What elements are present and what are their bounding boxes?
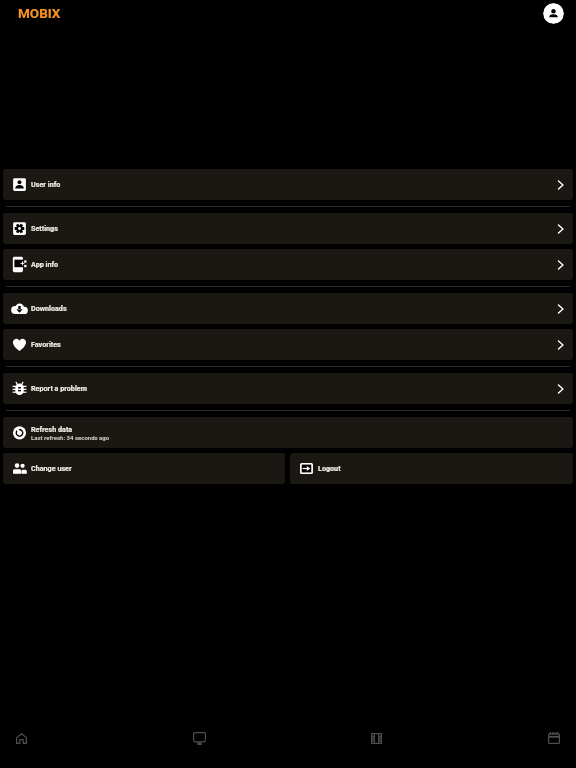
button[interactable]: Movies	[288, 706, 432, 768]
staticText: Change user	[31, 464, 72, 472]
staticText: App info	[31, 260, 59, 268]
staticText: Logout	[318, 464, 341, 472]
button[interactable]: Account	[543, 3, 564, 24]
button[interactable]: User info	[3, 169, 573, 200]
button[interactable]: Home	[0, 706, 144, 768]
staticText: Last refresh: 34 seconds ago	[31, 434, 110, 441]
staticText: Report a problem	[31, 384, 87, 392]
staticText: Downloads	[31, 304, 67, 312]
button[interactable]: Refresh data	[3, 417, 573, 448]
staticText: Favorites	[31, 340, 61, 348]
button[interactable]: Report a problem	[3, 373, 573, 404]
button[interactable]: Change user	[3, 453, 285, 484]
staticText: User info	[31, 180, 61, 188]
button[interactable]: Favorites	[3, 329, 573, 360]
staticText: Refresh data	[31, 425, 73, 433]
button[interactable]: TV Guide	[432, 706, 576, 768]
staticText: MOBIX	[18, 5, 61, 21]
button[interactable]: Settings	[3, 213, 573, 244]
button[interactable]: App info	[3, 249, 573, 280]
button[interactable]: Live TV	[144, 706, 288, 768]
staticText: Settings	[31, 224, 58, 232]
button[interactable]: Downloads	[3, 293, 573, 324]
button[interactable]: Logout	[290, 453, 573, 484]
